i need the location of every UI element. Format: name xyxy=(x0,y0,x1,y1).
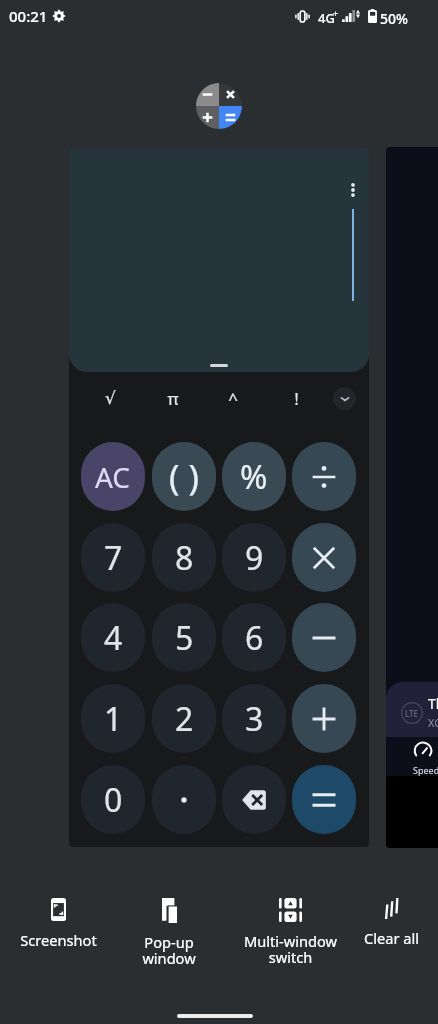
staticText: 7 xyxy=(104,536,123,580)
staticText: AC xyxy=(95,458,131,496)
button[interactable]: 2 xyxy=(152,684,216,753)
button[interactable]: Expand xyxy=(333,387,356,410)
staticText: 1 xyxy=(104,697,123,741)
button[interactable]: More options xyxy=(349,183,357,197)
button[interactable]: ( ) xyxy=(152,442,216,511)
staticText: 4 xyxy=(104,616,123,660)
staticText: 2 xyxy=(175,697,194,741)
button[interactable]: 3 xyxy=(222,684,286,753)
staticText: Multi-window switch xyxy=(244,931,337,968)
button[interactable]: Pop-up window xyxy=(109,898,229,969)
staticText: 6 xyxy=(245,616,264,660)
staticText: 5 xyxy=(175,616,194,660)
staticText: 50% xyxy=(380,9,408,28)
button[interactable]: 6 xyxy=(222,603,286,672)
button[interactable]: Screenshot xyxy=(0,898,118,950)
button[interactable]: % xyxy=(222,442,286,511)
button[interactable]: 1 xyxy=(81,684,145,753)
button[interactable]: Decimal point xyxy=(152,765,216,834)
button[interactable]: ! xyxy=(274,380,318,416)
button[interactable]: Divide xyxy=(292,442,356,511)
button[interactable]: 0 xyxy=(81,765,145,834)
staticText: ! xyxy=(294,387,299,410)
staticText: √ xyxy=(105,388,116,408)
staticText: π xyxy=(167,387,179,410)
button[interactable]: Backspace xyxy=(222,765,286,834)
button[interactable]: 4 xyxy=(81,603,145,672)
staticText: 8 xyxy=(175,536,194,580)
staticText: ^ xyxy=(228,387,238,410)
staticText: 00:21 xyxy=(9,6,48,26)
staticText: Speed xyxy=(413,764,438,776)
button[interactable]: 7 xyxy=(81,523,145,592)
staticText: Screenshot xyxy=(20,930,97,950)
staticText: 0 xyxy=(104,778,123,822)
staticText: LTE xyxy=(405,708,419,719)
staticText: 4G xyxy=(318,9,335,27)
button[interactable]: AC xyxy=(81,442,145,511)
button[interactable]: Subtract xyxy=(292,603,356,672)
button[interactable]: Settings xyxy=(52,9,66,23)
staticText: Pop-up window xyxy=(142,932,196,969)
button[interactable]: More options xyxy=(69,148,369,847)
button[interactable]: 8 xyxy=(152,523,216,592)
button[interactable]: Multi-window switch xyxy=(230,898,350,968)
staticText: Clear all xyxy=(364,928,419,948)
button[interactable]: √ xyxy=(88,380,132,416)
button[interactable]: Drag handle xyxy=(210,364,228,367)
button[interactable]: Calculator app xyxy=(196,83,242,129)
button[interactable]: Multiply xyxy=(292,523,356,592)
button[interactable]: π xyxy=(151,380,195,416)
staticText: % xyxy=(240,454,268,499)
button[interactable]: Clear all xyxy=(331,898,438,948)
button[interactable]: Equals xyxy=(292,765,356,834)
button[interactable]: ^ xyxy=(211,380,255,416)
staticText: XC xyxy=(428,715,438,730)
staticText: 9 xyxy=(245,536,264,580)
button[interactable]: 9 xyxy=(222,523,286,592)
staticText: + xyxy=(333,7,339,19)
button[interactable]: LTE xyxy=(386,147,438,848)
button[interactable]: Add xyxy=(292,684,356,753)
staticText: 3 xyxy=(245,697,264,741)
button[interactable]: 5 xyxy=(152,603,216,672)
staticText: ( ) xyxy=(169,453,200,501)
staticText: Th xyxy=(428,694,438,713)
